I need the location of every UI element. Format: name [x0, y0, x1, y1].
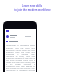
- staticText: Learn new skills: [22, 4, 42, 7]
- staticText: to join the modern workforce: [14, 8, 51, 11]
- staticText: Technology is reshaping every industry a…: [6, 44, 35, 72]
